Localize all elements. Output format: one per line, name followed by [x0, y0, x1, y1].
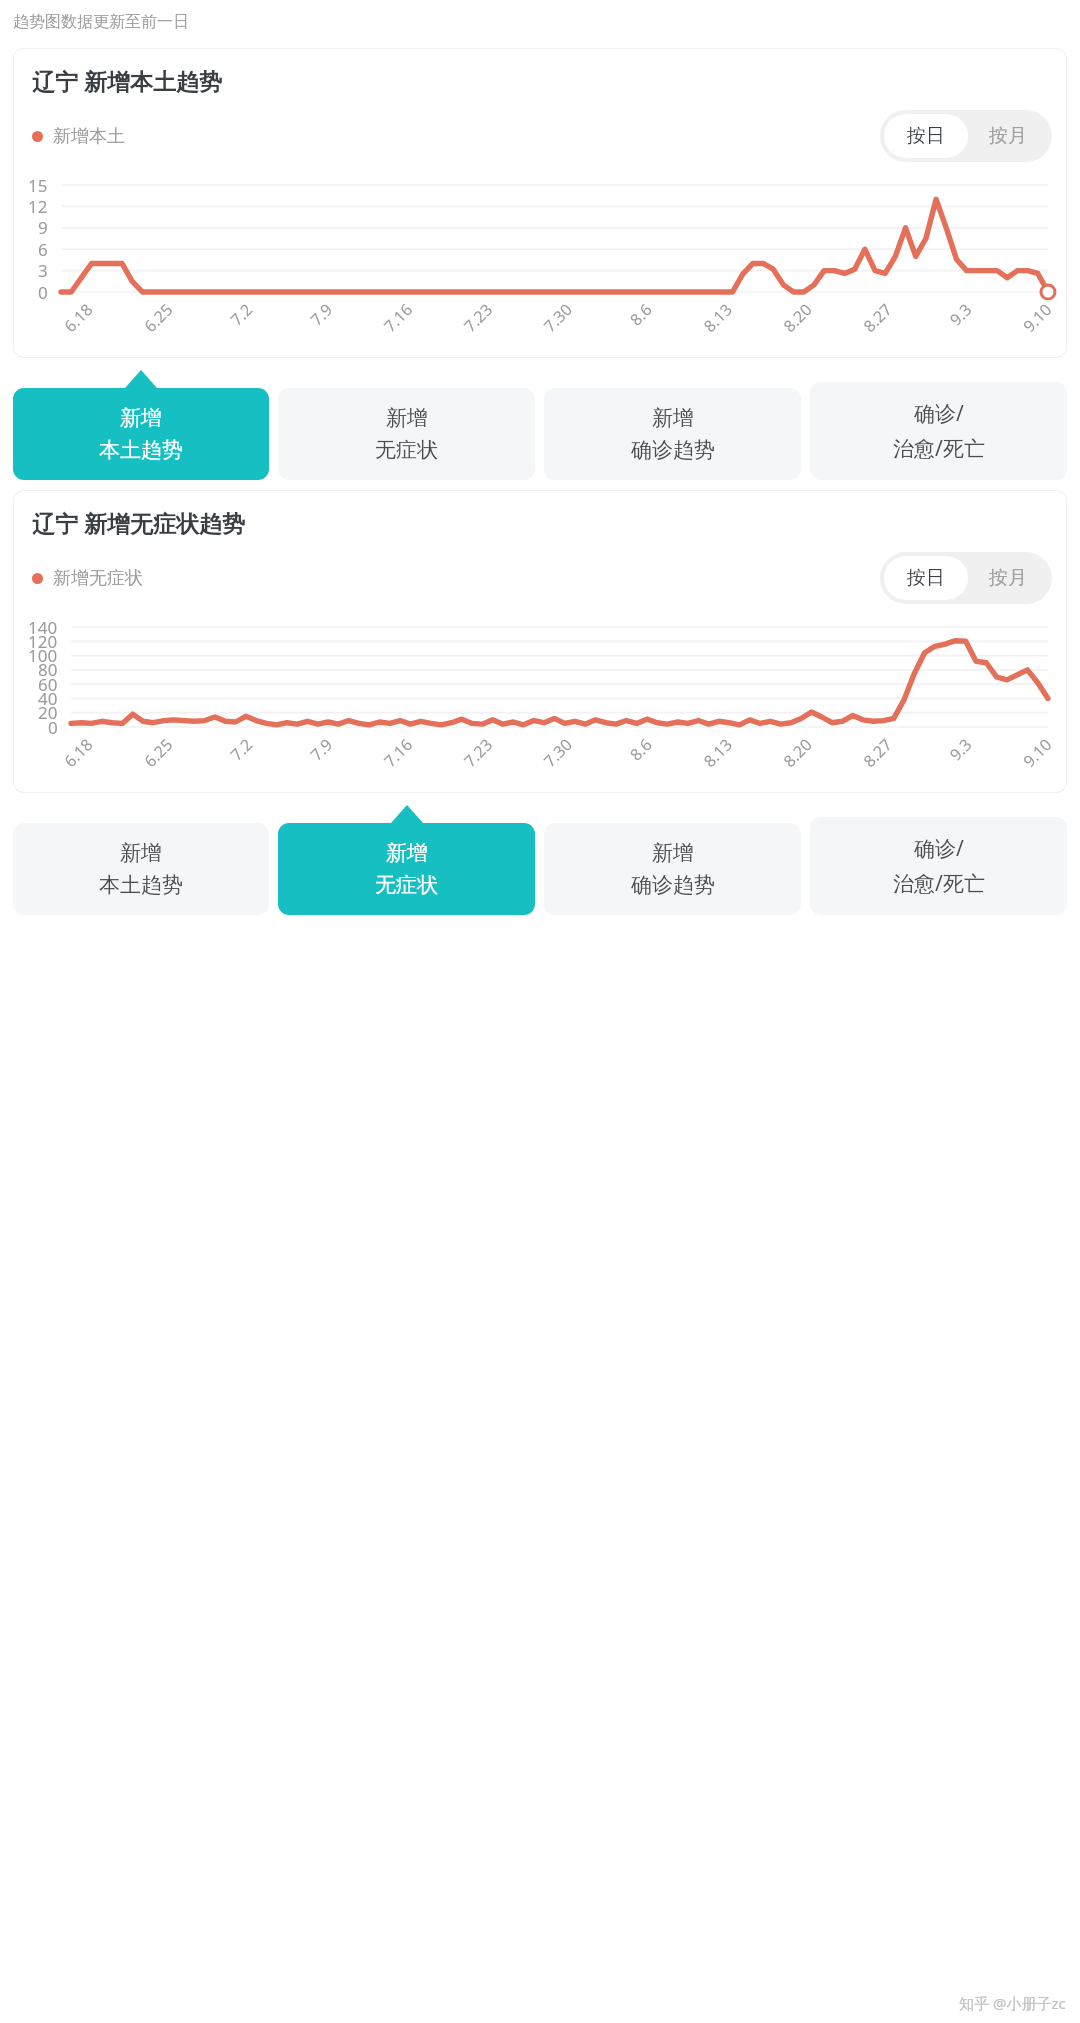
button[interactable]: 新增 [544, 823, 801, 915]
staticText: 确诊/ [914, 399, 964, 428]
staticText: 无症状 [375, 872, 438, 898]
button[interactable]: 新增 [278, 388, 535, 480]
staticText: 趋势图数据更新至前一日 [13, 12, 189, 32]
staticText: 治愈/死亡 [893, 869, 985, 898]
button[interactable]: 新增 [13, 388, 269, 480]
staticText: 新增 [120, 840, 162, 866]
staticText: 新增 [652, 840, 694, 866]
staticText: 本土趋势 [99, 437, 183, 463]
staticText: 按日 [907, 566, 945, 590]
button[interactable]: 新增 [13, 823, 269, 915]
staticText: 确诊趋势 [631, 872, 715, 898]
staticText: 治愈/死亡 [893, 434, 985, 463]
staticText: 辽宁 新增无症状趋势 [32, 507, 245, 538]
staticText: 按月 [989, 124, 1027, 148]
button[interactable]: 按日 [884, 556, 968, 600]
button[interactable]: 按月 [968, 556, 1048, 600]
staticText: 确诊趋势 [631, 437, 715, 463]
button[interactable]: 按月 [968, 114, 1048, 158]
staticText: 新增 [386, 405, 428, 431]
staticText: 按月 [989, 566, 1027, 590]
button[interactable]: 新增 [544, 388, 801, 480]
staticText: 新增 [386, 840, 428, 866]
staticText: 新增 [120, 405, 162, 431]
staticText: 本土趋势 [99, 872, 183, 898]
staticText: 新增 [652, 405, 694, 431]
button[interactable]: 新增 [278, 823, 535, 915]
staticText: 按日 [907, 124, 945, 148]
button[interactable]: 按日 [884, 114, 968, 158]
button[interactable]: 确诊/ [810, 382, 1067, 480]
staticText: 新增本土 [53, 125, 125, 148]
button[interactable]: 确诊/ [810, 817, 1067, 915]
staticText: 知乎 @小册子zc [959, 1993, 1066, 2013]
staticText: 确诊/ [914, 834, 964, 863]
staticText: 新增无症状 [53, 567, 143, 590]
staticText: 无症状 [375, 437, 438, 463]
staticText: 辽宁 新增本土趋势 [32, 65, 222, 96]
